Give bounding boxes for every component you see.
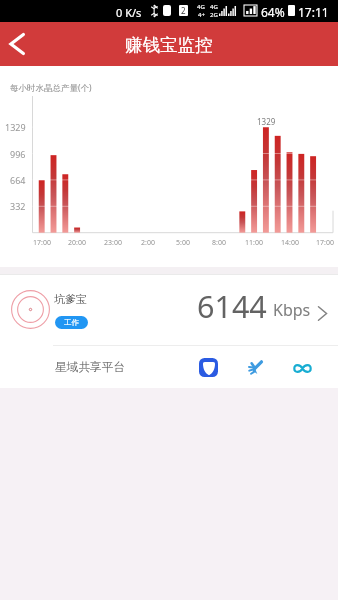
staticText: 4G xyxy=(197,3,205,11)
staticText: 23:00 xyxy=(104,238,122,248)
staticText: 332 xyxy=(10,200,26,212)
staticText: 996 xyxy=(10,148,26,160)
staticText: 664 xyxy=(10,174,26,186)
staticText: 1329 xyxy=(5,121,26,133)
staticText: 2 xyxy=(181,5,186,16)
staticText: 4G xyxy=(210,3,218,11)
staticText: 64% xyxy=(261,4,285,20)
staticText: 2:00 xyxy=(141,238,155,248)
staticText: 5:00 xyxy=(176,238,190,248)
staticText: 8:00 xyxy=(212,238,226,248)
staticText: 20:00 xyxy=(68,238,86,248)
staticText: 工作 xyxy=(64,318,79,327)
button[interactable] xyxy=(0,275,338,345)
staticText: 17:11 xyxy=(298,4,329,20)
button[interactable]: Back xyxy=(0,22,33,66)
staticText: 赚钱宝监控 xyxy=(125,34,213,56)
staticText: 坑爹宝 xyxy=(54,292,87,306)
staticText: 2G xyxy=(210,11,218,19)
staticText: 4+ xyxy=(198,11,205,19)
button[interactable]: Swallow app xyxy=(246,358,265,377)
staticText: Kbps xyxy=(273,299,311,321)
staticText: 每小时水晶总产量(个) xyxy=(10,82,92,94)
staticText: 11:00 xyxy=(245,238,263,248)
staticText: 星域共享平台 xyxy=(55,360,126,375)
staticText: 14:00 xyxy=(281,238,299,248)
button[interactable]: Infinity app xyxy=(292,358,313,379)
button[interactable]: Shield app xyxy=(199,358,218,377)
staticText: 17:00 xyxy=(33,238,51,248)
staticText: 17:00 xyxy=(316,238,334,248)
staticText: 0 K/s xyxy=(116,5,142,20)
staticText: 6144 xyxy=(197,285,267,327)
staticText: 1329 xyxy=(257,116,276,127)
